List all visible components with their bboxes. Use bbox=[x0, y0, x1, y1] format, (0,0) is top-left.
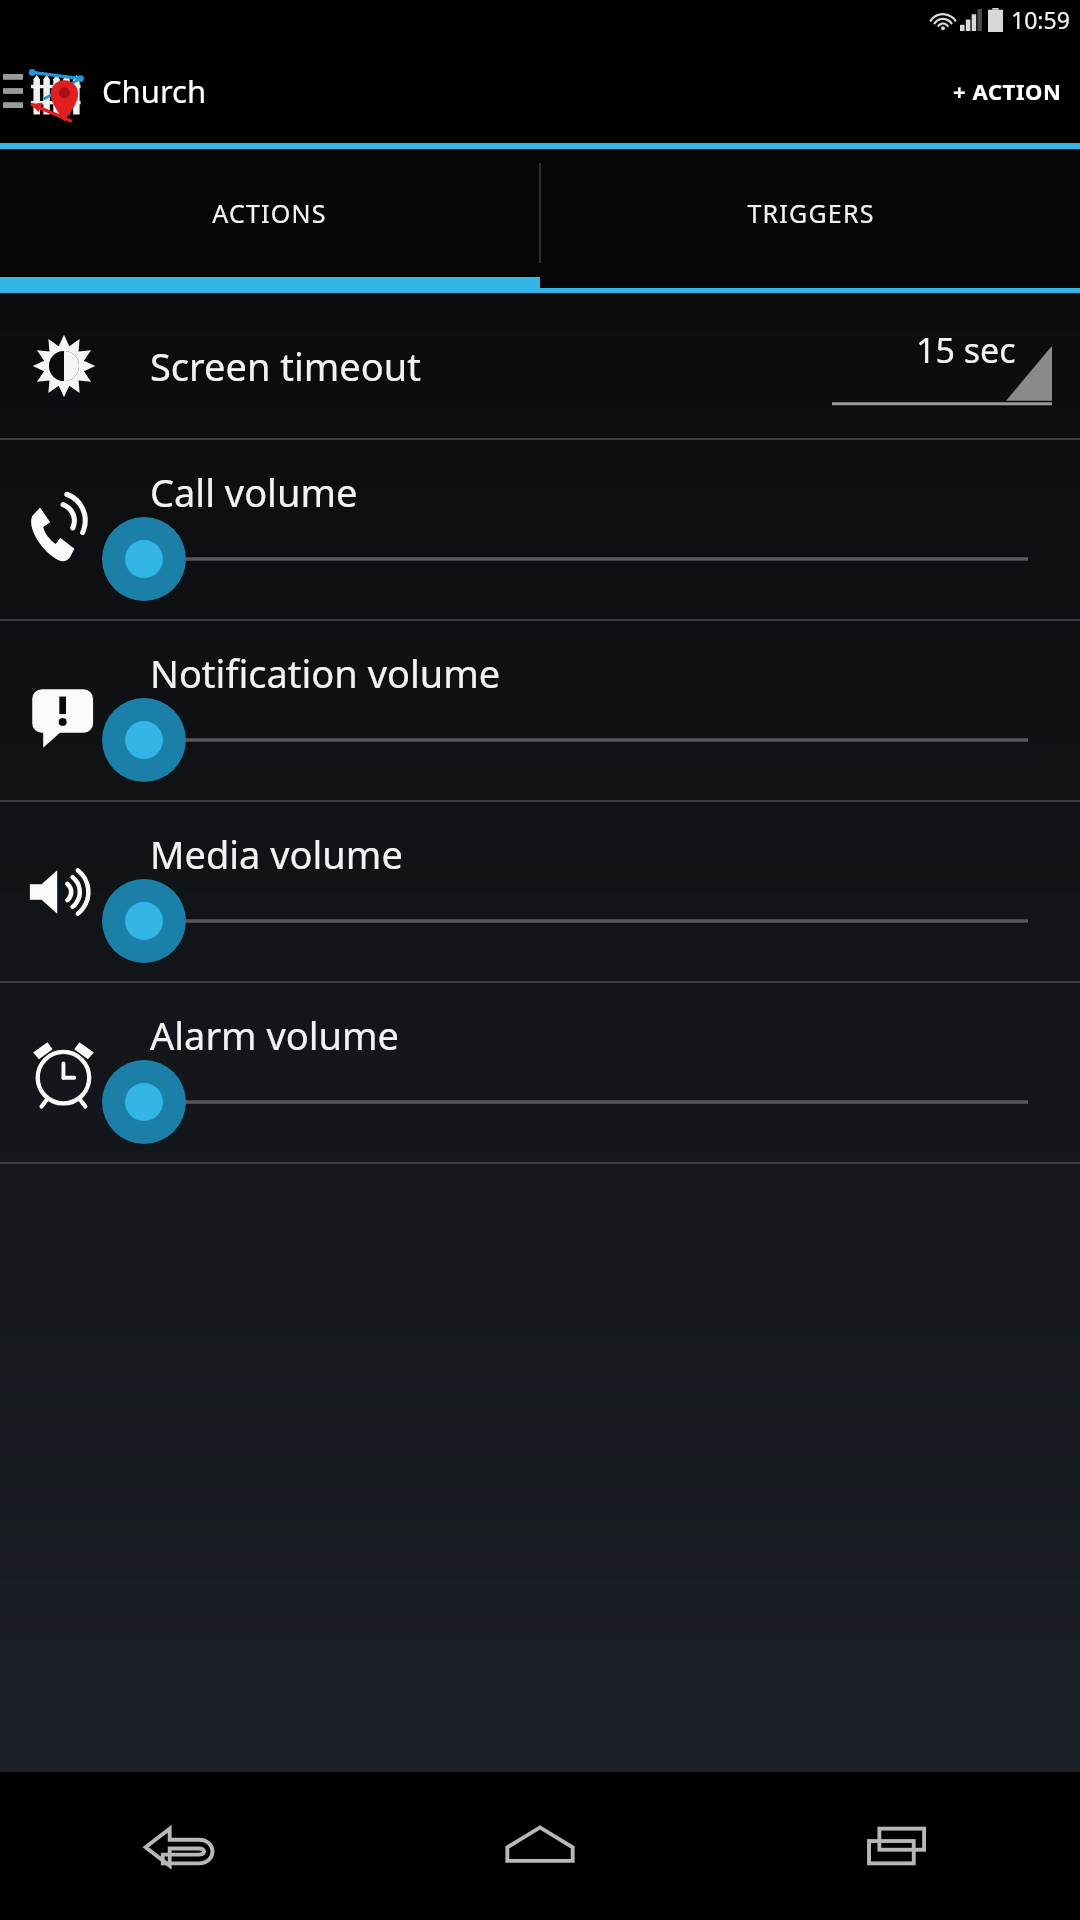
button[interactable]: Recent apps bbox=[720, 1772, 1080, 1920]
button[interactable]: Church bbox=[26, 38, 207, 143]
button[interactable]: + ACTION bbox=[935, 38, 1080, 143]
staticText: + ACTION bbox=[953, 76, 1062, 106]
button[interactable]: Notification volume bbox=[0, 621, 1080, 800]
button[interactable]: Alarm volume bbox=[0, 983, 1080, 1162]
staticText: Screen timeout bbox=[150, 340, 421, 392]
staticText: Alarm volume bbox=[150, 1009, 400, 1061]
button[interactable]: Navigation drawer bbox=[0, 38, 26, 143]
staticText: Notification volume bbox=[150, 647, 501, 699]
button[interactable]: Screen timeout bbox=[0, 293, 1080, 438]
staticText: 10:59 bbox=[1011, 4, 1070, 35]
button[interactable]: Media volume bbox=[0, 802, 1080, 981]
button[interactable]: TRIGGERS bbox=[541, 149, 1080, 277]
staticText: 15 sec bbox=[916, 327, 1016, 373]
button[interactable]: ACTIONS bbox=[0, 149, 539, 277]
staticText: Call volume bbox=[150, 466, 358, 518]
staticText: Church bbox=[102, 70, 207, 112]
button[interactable]: Home bbox=[360, 1772, 720, 1920]
staticText: ACTIONS bbox=[212, 196, 327, 230]
staticText: Media volume bbox=[150, 828, 403, 880]
button[interactable]: Call volume bbox=[0, 440, 1080, 619]
button[interactable]: Back bbox=[0, 1772, 360, 1920]
staticText: TRIGGERS bbox=[747, 196, 875, 230]
